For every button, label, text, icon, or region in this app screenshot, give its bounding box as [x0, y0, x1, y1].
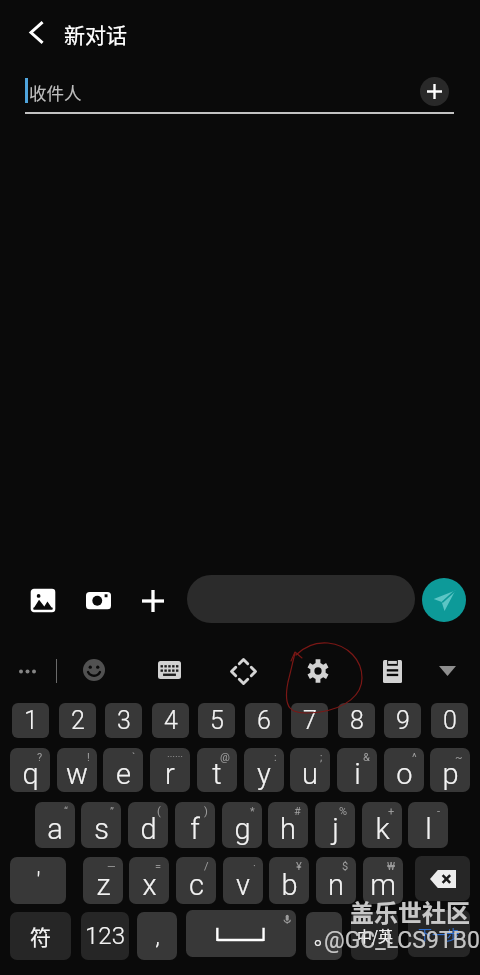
button[interactable]: 4: [152, 703, 189, 738]
button[interactable]: 符: [10, 912, 71, 960]
button[interactable]: Space: [186, 910, 296, 957]
staticText: y: [257, 757, 271, 791]
staticText: 5: [210, 706, 224, 735]
button[interactable]: Message input: [187, 575, 415, 623]
staticText: ': [36, 867, 41, 895]
button[interactable]: !: [57, 748, 97, 792]
staticText: 2: [71, 706, 85, 735]
button[interactable]: #: [268, 802, 308, 848]
staticText: 4: [164, 706, 178, 735]
button[interactable]: ;: [290, 748, 330, 792]
button[interactable]: 1: [12, 703, 49, 738]
button[interactable]: 5: [198, 703, 235, 738]
button[interactable]: (: [128, 802, 168, 848]
button[interactable]: `: [103, 748, 143, 792]
button[interactable]: ?: [10, 748, 50, 792]
button[interactable]: ': [10, 857, 66, 904]
button[interactable]: 0: [431, 703, 468, 738]
button[interactable]: 8: [338, 703, 375, 738]
button[interactable]: ·: [223, 857, 263, 904]
staticText: !: [87, 751, 90, 764]
staticText: 7: [303, 706, 317, 735]
staticText: 6: [257, 706, 271, 735]
staticText: f: [190, 812, 200, 846]
staticText: ,: [155, 922, 160, 950]
button[interactable]: ¥: [269, 857, 309, 904]
staticText: @GC_LCS9TB0: [324, 927, 480, 954]
button[interactable]: 下一步: [408, 910, 470, 957]
button[interactable]: ^: [384, 748, 424, 792]
staticText: +: [388, 805, 395, 818]
staticText: ~: [455, 751, 463, 764]
button[interactable]: —: [83, 857, 123, 904]
button[interactable]: More attachments: [136, 584, 169, 617]
staticText: o: [396, 757, 413, 791]
staticText: 3: [117, 706, 131, 735]
button[interactable]: 2: [59, 703, 96, 738]
button[interactable]: Move cursor: [227, 655, 259, 687]
staticText: 下一步: [418, 924, 460, 944]
button[interactable]: 6: [245, 703, 282, 738]
staticText: /: [204, 860, 209, 873]
staticText: s: [94, 812, 109, 846]
staticText: 0: [443, 706, 457, 735]
staticText: l: [425, 812, 432, 846]
button[interactable]: Settings: [302, 655, 334, 687]
staticText: “: [64, 805, 68, 818]
staticText: b: [281, 868, 298, 902]
button[interactable]: Camera: [82, 584, 115, 617]
staticText: a: [47, 812, 63, 846]
button[interactable]: Add recipient: [420, 77, 449, 106]
button[interactable]: Backspace: [415, 856, 470, 901]
button[interactable]: 7: [291, 703, 328, 738]
button[interactable]: +: [362, 802, 402, 848]
button[interactable]: =: [129, 857, 169, 904]
staticText: d: [140, 812, 157, 846]
staticText: i: [354, 757, 361, 791]
button[interactable]: ₩: [363, 857, 403, 904]
staticText: x: [142, 868, 157, 902]
button[interactable]: 9: [384, 703, 421, 738]
button[interactable]: Gallery: [26, 584, 59, 617]
button[interactable]: 。: [306, 912, 342, 960]
button[interactable]: Send: [422, 578, 466, 622]
button[interactable]: -: [408, 802, 448, 848]
staticText: 符: [30, 921, 51, 951]
button[interactable]: “: [35, 802, 75, 848]
button[interactable]: 3: [105, 703, 142, 738]
button[interactable]: Back: [14, 11, 57, 54]
staticText: p: [442, 757, 459, 791]
staticText: v: [236, 868, 250, 902]
button[interactable]: :: [244, 748, 284, 792]
button[interactable]: Keyboard layout: [153, 654, 185, 686]
staticText: $: [342, 860, 349, 873]
button[interactable]: ): [175, 802, 215, 848]
button[interactable]: ……: [150, 748, 190, 792]
staticText: g: [234, 812, 251, 846]
button[interactable]: Clipboard: [376, 655, 408, 687]
staticText: ;: [320, 751, 323, 764]
button[interactable]: ~: [430, 748, 470, 792]
button[interactable]: ,: [137, 912, 177, 960]
button[interactable]: 中/英: [351, 912, 398, 960]
staticText: n: [328, 868, 344, 902]
button[interactable]: *: [222, 802, 262, 848]
staticText: *: [250, 805, 255, 818]
button[interactable]: ”: [81, 802, 121, 848]
staticText: w: [66, 757, 88, 791]
staticText: ¥: [296, 860, 302, 873]
staticText: (: [157, 805, 161, 818]
staticText: r: [165, 757, 175, 791]
button[interactable]: 123: [81, 912, 129, 960]
button[interactable]: More options: [11, 655, 43, 687]
staticText: 收件人: [29, 80, 82, 105]
staticText: :: [274, 751, 277, 764]
button[interactable]: $: [316, 857, 356, 904]
button[interactable]: /: [176, 857, 216, 904]
button[interactable]: Emoji: [78, 654, 110, 686]
button[interactable]: @: [197, 748, 237, 792]
button[interactable]: %: [315, 802, 355, 848]
button[interactable]: Hide keyboard: [431, 655, 463, 687]
staticText: -: [437, 805, 441, 818]
button[interactable]: &: [337, 748, 377, 792]
